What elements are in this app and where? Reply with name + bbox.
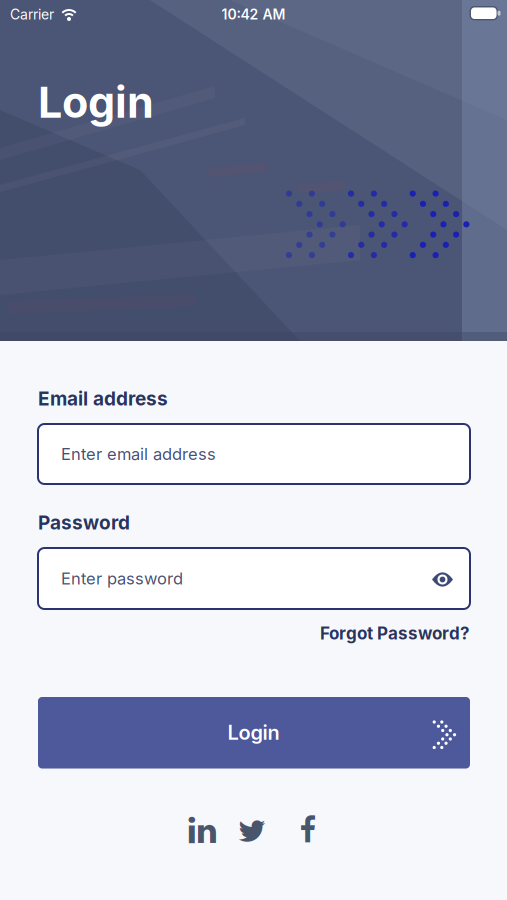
button[interactable]: Login bbox=[38, 697, 470, 768]
staticText: 10:42 AM bbox=[221, 6, 285, 23]
staticText: Forgot Password? bbox=[320, 623, 470, 644]
staticText: Login bbox=[227, 720, 279, 745]
staticText: Enter password bbox=[61, 568, 183, 588]
staticText: Login bbox=[38, 76, 154, 128]
staticText:  bbox=[188, 814, 215, 846]
staticText: Password bbox=[38, 511, 130, 534]
staticText: Carrier bbox=[10, 6, 54, 23]
staticText:  bbox=[299, 815, 316, 844]
staticText: Enter email address bbox=[61, 444, 216, 464]
button[interactable]:  bbox=[238, 816, 266, 846]
button[interactable]: Enter email address bbox=[38, 424, 470, 484]
staticText: Email address bbox=[38, 387, 168, 410]
button[interactable]: Forgot Password? bbox=[320, 623, 470, 644]
button[interactable]:  bbox=[299, 815, 316, 844]
staticText:  bbox=[238, 816, 266, 846]
button[interactable]: Enter password bbox=[38, 548, 470, 609]
button[interactable]:  bbox=[188, 814, 215, 846]
